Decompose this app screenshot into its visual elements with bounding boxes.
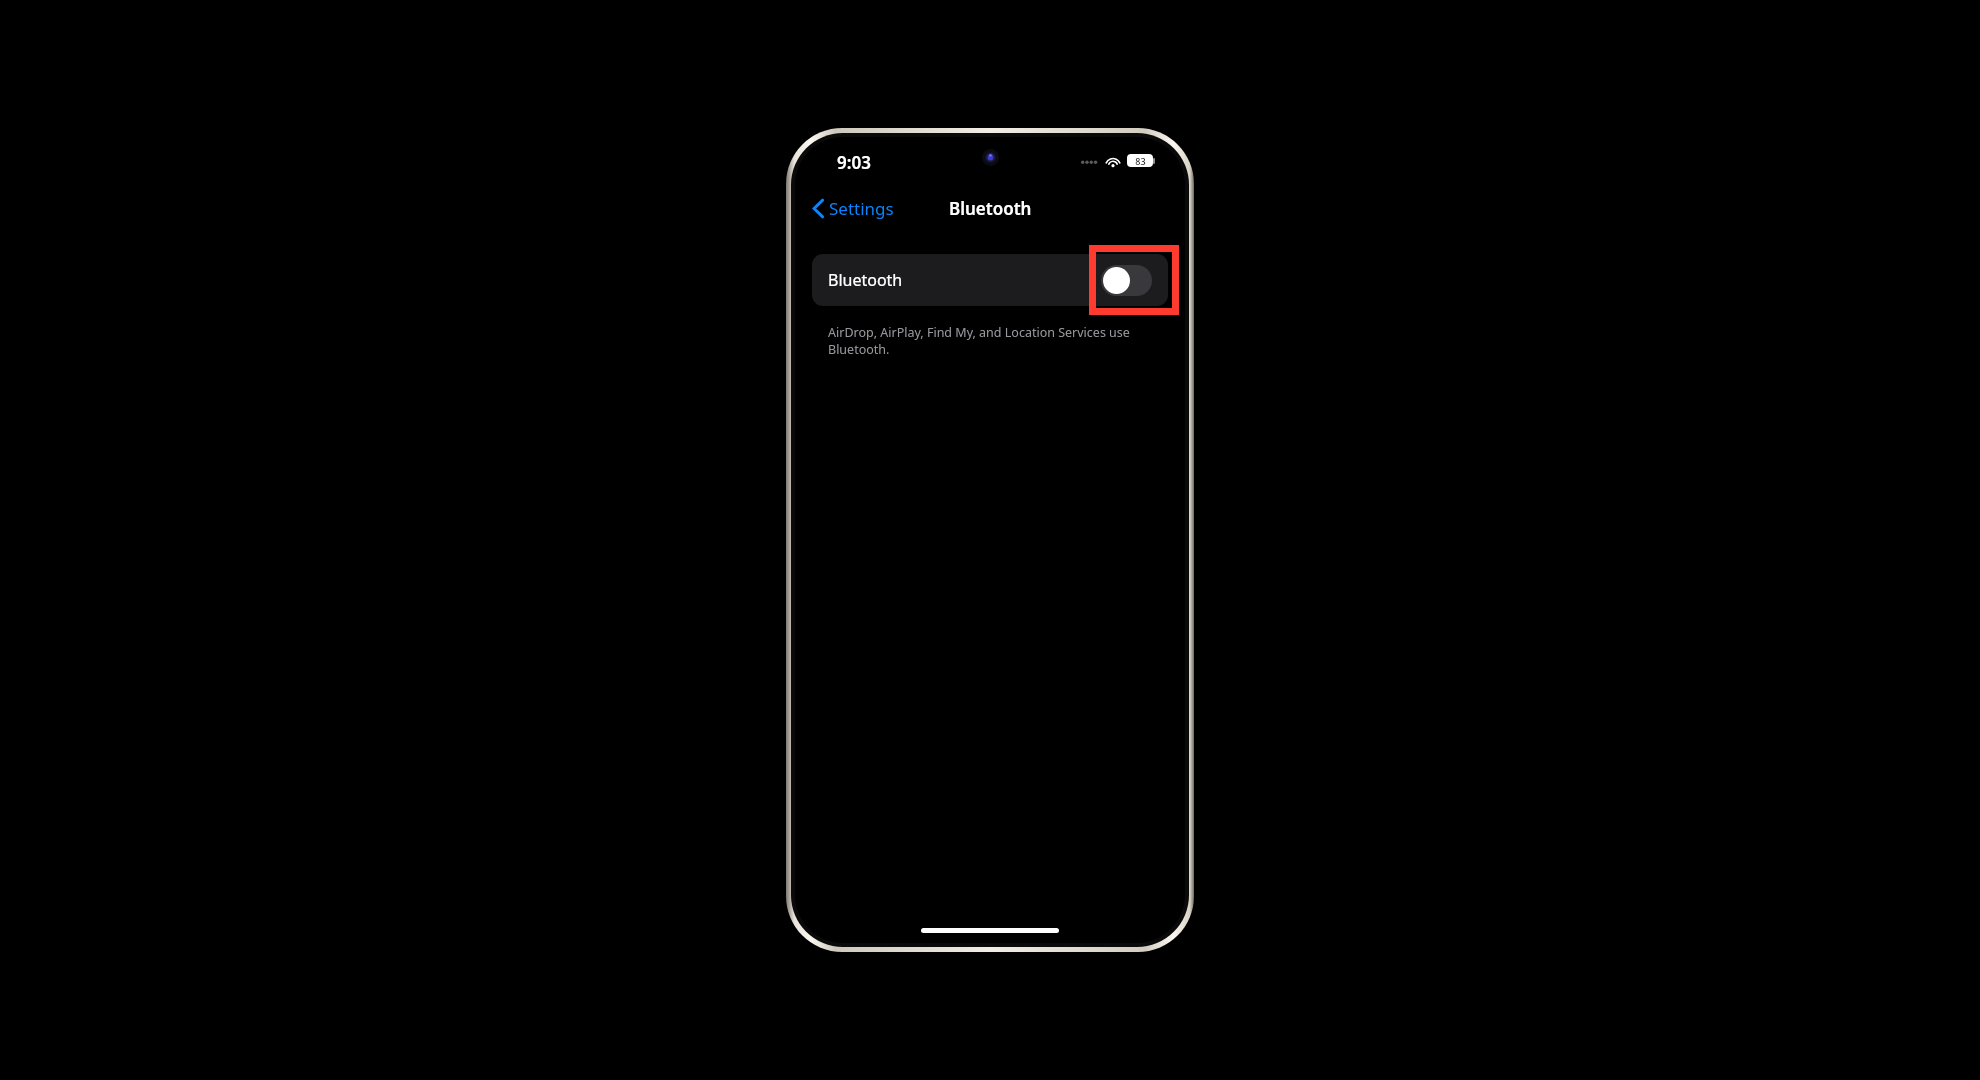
staticText: AirDrop, AirPlay, Find My, and Location …	[828, 324, 1152, 358]
button[interactable]: Settings	[809, 193, 898, 224]
staticText: Settings	[829, 197, 894, 220]
button[interactable]: Bluetooth	[812, 254, 1168, 306]
staticText: 9:03	[837, 151, 871, 174]
staticText: Bluetooth	[949, 197, 1032, 220]
staticText: 83	[1135, 155, 1146, 167]
button[interactable]: Bluetooth toggle, off	[1101, 265, 1152, 296]
staticText: Bluetooth	[828, 269, 903, 291]
